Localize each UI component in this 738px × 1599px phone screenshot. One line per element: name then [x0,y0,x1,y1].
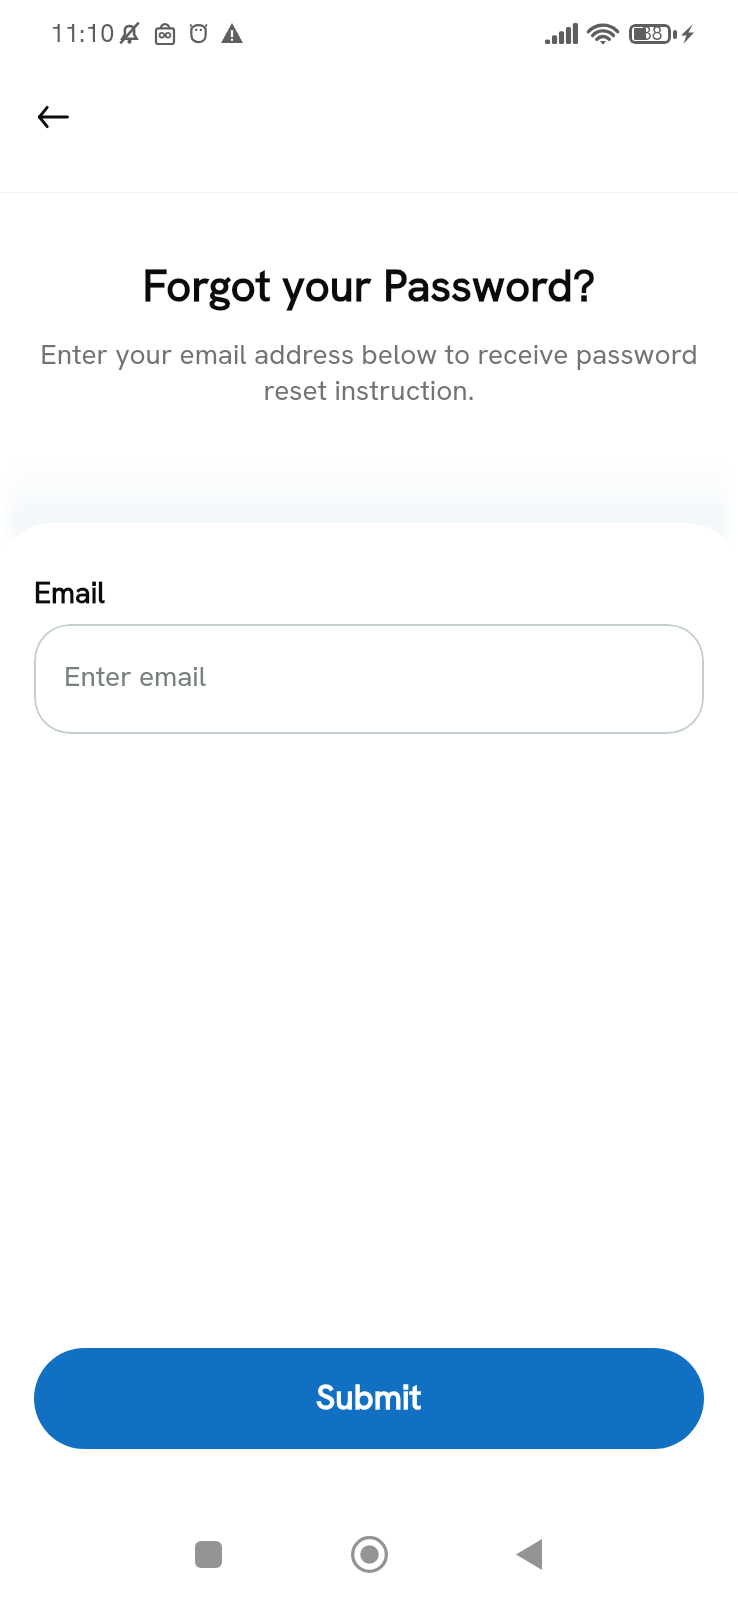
staticText: Forgot your Password? [0,257,738,314]
staticText: Enter email [64,658,207,694]
button[interactable]: Home [309,1536,429,1599]
button[interactable]: Enter email [34,624,704,734]
staticText: 11:10 [50,16,115,50]
button[interactable]: Submit [34,1348,704,1449]
staticText: Email [34,574,105,612]
button[interactable]: Back [469,1539,589,1599]
button[interactable]: Back [21,85,85,149]
staticText: Submit [316,1375,422,1419]
staticText: Enter your email address below to receiv… [28,336,710,408]
button[interactable]: Recents [148,1541,268,1599]
staticText: 38 [641,21,663,46]
